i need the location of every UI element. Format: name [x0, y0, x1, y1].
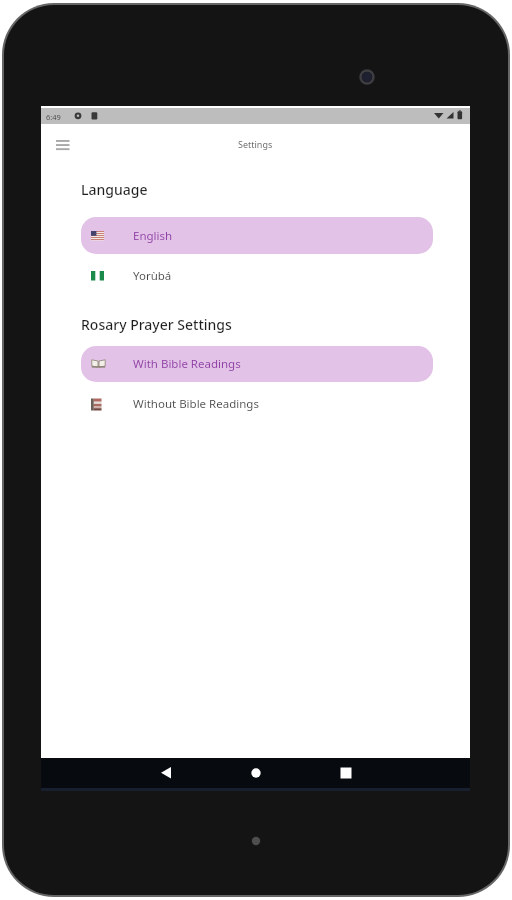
- button[interactable]: [340, 767, 352, 779]
- staticText: Settings: [238, 138, 273, 150]
- button[interactable]: [250, 767, 262, 779]
- staticText: English: [133, 228, 173, 244]
- button[interactable]: English: [81, 217, 433, 254]
- button[interactable]: [56, 140, 70, 150]
- staticText: With Bible Readings: [133, 356, 241, 372]
- button[interactable]: [160, 767, 172, 779]
- staticText: Yorùbá: [133, 268, 172, 284]
- button[interactable]: With Bible Readings: [81, 346, 433, 382]
- staticText: Rosary Prayer Settings: [81, 315, 232, 334]
- button[interactable]: Without Bible Readings: [81, 386, 433, 422]
- staticText: 6:49: [46, 112, 61, 122]
- button[interactable]: Yorùbá: [81, 258, 433, 294]
- staticText: Language: [81, 180, 148, 199]
- staticText: Without Bible Readings: [133, 396, 259, 412]
